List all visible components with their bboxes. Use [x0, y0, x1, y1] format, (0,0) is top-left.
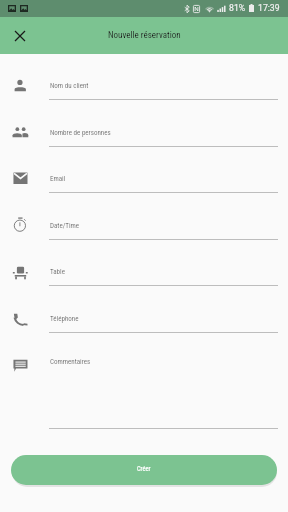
staticText: Email	[50, 175, 66, 183]
staticText: Créer	[137, 465, 151, 473]
button[interactable]: Créer	[11, 455, 277, 485]
button[interactable]: Table	[0, 266, 288, 287]
staticText: 81%	[229, 3, 246, 13]
staticText: Commentaires	[50, 358, 91, 366]
staticText: Table	[50, 268, 65, 276]
button[interactable]: Date/Time	[0, 220, 288, 242]
button[interactable]: Email	[0, 173, 288, 194]
button[interactable]: Téléphone	[0, 313, 288, 334]
button[interactable]: Close	[7, 23, 32, 48]
staticText: Date/Time	[50, 222, 80, 230]
staticText: Nombre de personnes	[50, 129, 111, 137]
staticText: Nom du client	[50, 82, 89, 90]
button[interactable]: Nom du client	[0, 80, 288, 101]
staticText: Nouvelle réservation	[108, 30, 181, 41]
staticText: 17:39	[258, 3, 280, 13]
button[interactable]: Commentaires	[0, 356, 288, 430]
button[interactable]: Nombre de personnes	[0, 127, 288, 149]
staticText: Téléphone	[50, 315, 79, 323]
